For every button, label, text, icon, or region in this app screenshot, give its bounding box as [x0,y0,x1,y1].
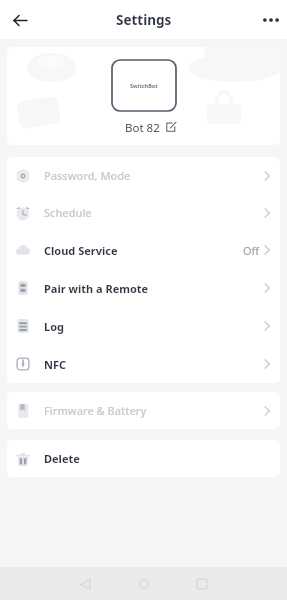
button[interactable]: Pair with a Remote [7,269,280,307]
other: Rename device [166,122,176,132]
staticText: Schedule [44,205,92,220]
staticText: Log [44,319,64,334]
button[interactable]: Delete [7,440,280,477]
staticText: Bot 82 [125,120,160,134]
staticText: Off [243,243,260,258]
staticText: NFC [44,357,67,372]
staticText: Delete [44,451,80,466]
button[interactable]: Recent apps [187,569,217,599]
button[interactable]: Firmware & Battery [7,392,280,429]
staticText: SwitchBot [130,82,158,89]
button[interactable]: Back [6,6,34,34]
button[interactable]: More options [257,6,285,34]
staticText: Pair with a Remote [44,281,149,296]
button[interactable]: Password, Mode [7,157,280,194]
staticText: Password, Mode [44,168,131,183]
button[interactable]: Log [7,307,280,345]
button[interactable]: Cloud Service [7,231,280,269]
button[interactable]: NFC [7,345,280,383]
button[interactable]: Schedule [7,194,280,231]
button[interactable]: Back [70,569,100,599]
button[interactable]: Bot 82 [125,120,176,134]
staticText: Firmware & Battery [44,403,147,418]
staticText: Cloud Service [44,243,118,258]
staticText: Settings [116,11,172,29]
